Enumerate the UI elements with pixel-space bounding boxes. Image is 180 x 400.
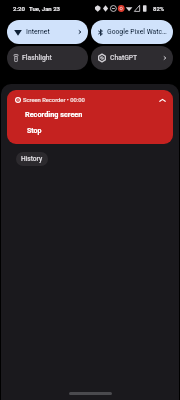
- staticText: Internet: [26, 28, 75, 36]
- staticText: Screen Recorder • 00:00: [23, 97, 85, 104]
- staticText: Recording screen: [25, 110, 83, 119]
- staticText: Stop: [27, 127, 42, 135]
- staticText: ChatGPT: [110, 54, 160, 62]
- button[interactable]: Stop: [23, 126, 46, 136]
- button[interactable]: Internet: [7, 20, 88, 44]
- staticText: History: [21, 155, 43, 163]
- button[interactable]: Google Pixel Watc…: [91, 20, 173, 44]
- button[interactable]: History: [16, 152, 48, 166]
- staticText: Google Pixel Watc…: [107, 28, 168, 36]
- button[interactable]: Flashlight: [7, 46, 88, 70]
- other: Collapse: [159, 97, 166, 104]
- button[interactable]: ChatGPT: [91, 46, 173, 70]
- staticText: Flashlight: [22, 54, 83, 62]
- staticText: Tue, Jan 23: [29, 5, 61, 12]
- staticText: 2:20: [13, 5, 25, 12]
- button[interactable]: Screen Recorder • 00:00: [7, 90, 173, 144]
- staticText: 82%: [153, 5, 165, 12]
